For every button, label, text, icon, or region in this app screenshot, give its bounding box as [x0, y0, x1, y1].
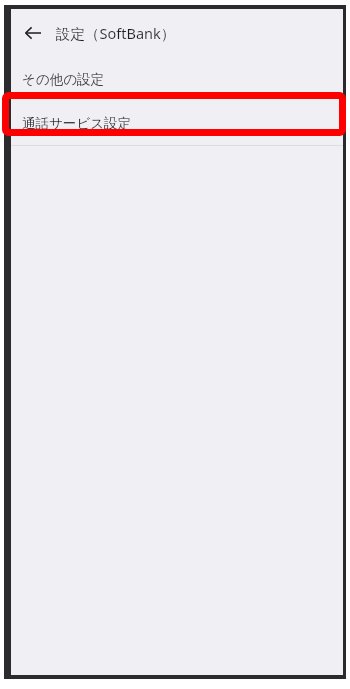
staticText: 通話サービス設定: [22, 115, 131, 132]
staticText: 設定（SoftBank）: [56, 23, 176, 43]
button[interactable]: その他の設定: [11, 57, 343, 101]
button[interactable]: 通話サービス設定: [11, 101, 343, 145]
staticText: その他の設定: [22, 71, 104, 88]
button[interactable]: 戻る: [11, 11, 55, 55]
